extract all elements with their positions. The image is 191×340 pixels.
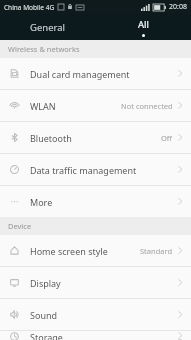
button[interactable]: Data traffic management: [0, 154, 191, 185]
button[interactable]: Display: [0, 267, 191, 298]
staticText: Data traffic management: [30, 164, 137, 176]
staticText: Storage: [30, 331, 63, 340]
staticText: Display: [30, 277, 61, 289]
button[interactable]: More: [0, 186, 191, 217]
staticText: Off: [161, 133, 173, 143]
button[interactable]: Sound: [0, 299, 191, 330]
staticText: Not connected: [121, 101, 173, 111]
staticText: Home screen style: [30, 245, 108, 257]
button[interactable]: General: [0, 14, 95, 40]
staticText: China Mobile 4G: [4, 3, 55, 12]
staticText: General: [30, 21, 66, 34]
staticText: 20:08: [169, 2, 187, 12]
staticText: Wireless & networks: [8, 44, 80, 54]
staticText: WLAN: [30, 100, 56, 112]
button[interactable]: Bluetooth: [0, 122, 191, 153]
staticText: All: [138, 18, 149, 31]
button[interactable]: Dual card management: [0, 58, 191, 89]
staticText: Dual card management: [30, 68, 130, 80]
staticText: Sound: [30, 309, 58, 321]
staticText: Standard: [140, 246, 173, 256]
button[interactable]: Storage: [0, 331, 191, 340]
button[interactable]: All: [95, 14, 191, 40]
staticText: More: [30, 196, 53, 208]
staticText: Device: [8, 221, 32, 231]
button[interactable]: Home screen style: [0, 235, 191, 266]
button[interactable]: WLAN: [0, 90, 191, 121]
staticText: Bluetooth: [30, 132, 72, 144]
